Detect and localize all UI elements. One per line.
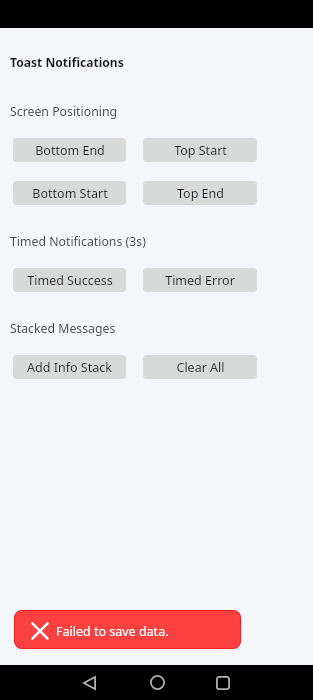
button[interactable]: Clear All [143,355,257,379]
button[interactable]: Timed Error [143,268,257,292]
button[interactable]: Back [71,665,107,700]
button[interactable]: Bottom Start [13,181,126,205]
staticText: Bottom End [35,142,105,159]
button[interactable]: Timed Success [13,268,126,292]
staticText: Toast Notifications [10,54,124,70]
button[interactable]: Home [139,665,175,700]
staticText: Add Info Stack [27,359,112,376]
staticText: Timed Notifications (3s) [10,233,146,250]
staticText: Clear All [176,359,225,376]
staticText: Screen Positioning [10,103,118,120]
button[interactable]: Top Start [143,138,257,162]
button[interactable]: Failed to save data. [14,610,241,649]
button[interactable]: Top End [143,181,257,205]
button[interactable]: Bottom End [13,138,126,162]
button[interactable]: Recent apps [205,665,241,700]
staticText: Failed to save data. [56,623,169,640]
staticText: Bottom Start [32,185,108,202]
staticText: Timed Success [27,272,113,289]
button[interactable]: Add Info Stack [13,355,126,379]
staticText: Top Start [174,142,227,159]
staticText: Top End [177,185,224,202]
staticText: Stacked Messages [10,320,116,337]
staticText: Timed Error [165,272,235,289]
